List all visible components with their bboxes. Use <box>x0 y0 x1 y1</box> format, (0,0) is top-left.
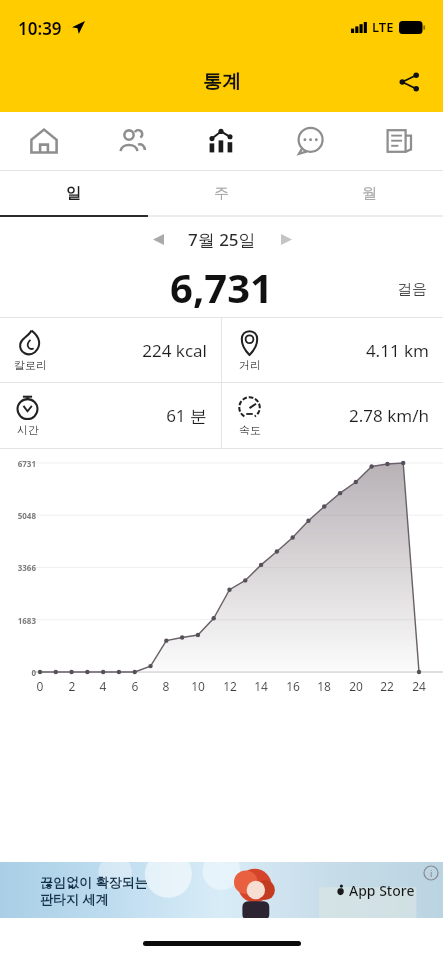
staticText: i <box>430 867 433 879</box>
staticText: 7월 25일 <box>188 228 256 251</box>
staticText: 거리 <box>239 358 261 372</box>
staticText: 14 <box>251 678 271 694</box>
staticText: 4 <box>93 678 113 694</box>
staticText: 5048 <box>4 510 36 521</box>
staticText: 3366 <box>4 562 36 573</box>
button[interactable]: Statistics <box>176 112 265 170</box>
button[interactable]: 일 <box>0 171 147 215</box>
button[interactable]: Share <box>385 58 433 106</box>
staticText: 4.11 km <box>263 339 429 362</box>
staticText: 6731 <box>4 458 36 469</box>
staticText: 6 <box>125 678 145 694</box>
staticText: 1683 <box>4 615 36 626</box>
staticText: 22 <box>377 678 397 694</box>
staticText: 끊임없이 확장되는 판타지 세계 <box>40 873 148 908</box>
staticText: 일 <box>66 184 81 203</box>
button[interactable]: 끊임없이 확장되는 판타지 세계 <box>0 862 443 918</box>
staticText: 6,731 <box>170 260 273 314</box>
staticText: 10 <box>188 678 208 694</box>
staticText: 18 <box>314 678 334 694</box>
staticText: 칼로리 <box>14 358 47 372</box>
staticText: 2.78 km/h <box>263 404 429 427</box>
button[interactable]: 주 <box>147 171 295 215</box>
staticText: 20 <box>346 678 366 694</box>
staticText: 0 <box>30 678 50 694</box>
button[interactable]: 속도 <box>222 383 443 448</box>
staticText: 걸음 <box>397 280 427 299</box>
button[interactable]: 칼로리 <box>0 318 221 382</box>
staticText: 16 <box>283 678 303 694</box>
staticText: 224 kcal <box>47 339 207 362</box>
staticText: 속도 <box>239 423 261 437</box>
staticText: LTE <box>372 18 394 36</box>
button[interactable]: 시간 <box>0 383 221 448</box>
button[interactable]: 거리 <box>222 318 443 382</box>
button[interactable]: Home <box>0 112 88 170</box>
button[interactable]: Previous day <box>140 221 176 257</box>
staticText: 10:39 <box>18 17 62 40</box>
staticText: 12 <box>220 678 240 694</box>
staticText: 0 <box>4 667 36 678</box>
staticText: 24 <box>409 678 429 694</box>
button[interactable]: News <box>354 112 443 170</box>
staticText: 통계 <box>203 70 241 94</box>
button[interactable]: Next day <box>268 221 304 257</box>
staticText: 2 <box>62 678 82 694</box>
staticText: 8 <box>156 678 176 694</box>
staticText: 시간 <box>17 423 39 437</box>
button[interactable]: Chat <box>265 112 354 170</box>
staticText: 월 <box>362 184 377 203</box>
staticText: 61 분 <box>41 404 207 427</box>
staticText: App Store <box>349 881 415 900</box>
button[interactable]: Ad info <box>423 865 439 881</box>
button[interactable]: Friends <box>88 112 176 170</box>
button[interactable]: 월 <box>295 171 443 215</box>
staticText: 주 <box>214 184 229 203</box>
